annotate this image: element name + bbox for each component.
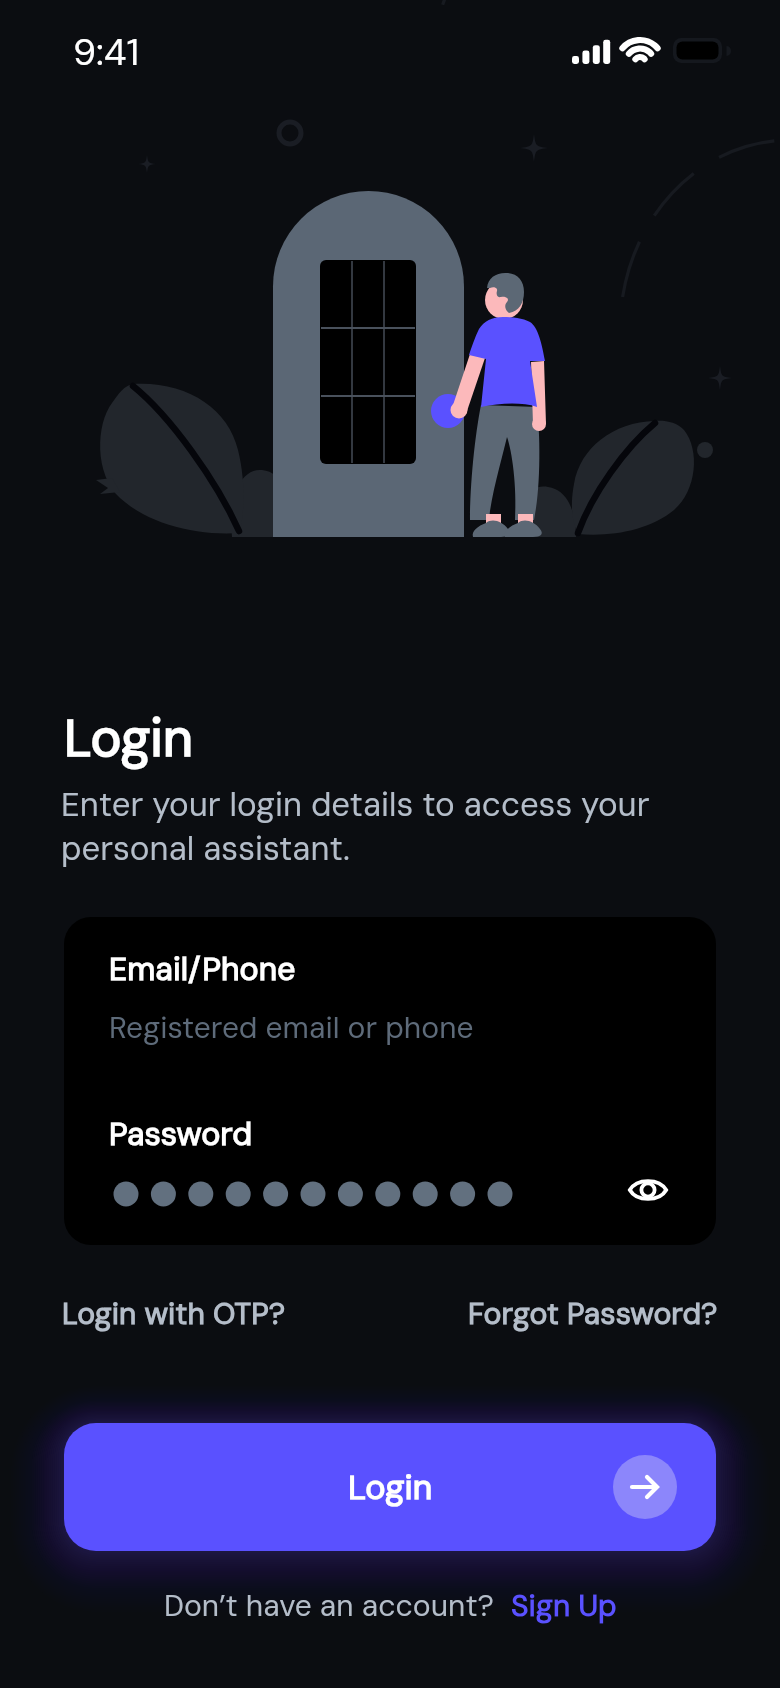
staticText: 9:41 bbox=[73, 28, 140, 76]
button[interactable]: Sign Up bbox=[511, 1586, 617, 1625]
staticText: Email/Phone bbox=[109, 948, 296, 990]
button[interactable]: Show password bbox=[620, 1162, 676, 1218]
button[interactable]: Forgot Password? bbox=[468, 1294, 718, 1333]
button[interactable]: Login bbox=[64, 1423, 716, 1551]
staticText: Don’t have an account? bbox=[164, 1586, 511, 1625]
staticText: Enter your login details to access your … bbox=[61, 783, 681, 871]
staticText: Password bbox=[109, 1113, 253, 1155]
staticText: Registered email or phone bbox=[109, 1008, 474, 1047]
staticText: Login bbox=[64, 704, 193, 772]
other: Continue bbox=[613, 1455, 677, 1519]
button[interactable]: Registered email or phone bbox=[109, 1008, 474, 1047]
button[interactable]: Login with OTP? bbox=[62, 1294, 286, 1333]
staticText: Login bbox=[348, 1465, 433, 1509]
